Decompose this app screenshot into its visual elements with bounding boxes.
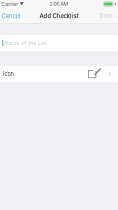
staticText: Carrier [1,1,18,7]
button[interactable]: Cancel [0,8,23,24]
button[interactable]: Done [97,8,118,24]
staticText: Name of the List [4,40,47,46]
staticText: 2:06 AM [49,1,68,7]
staticText: Icon [3,71,14,77]
staticText: Cancel [2,12,20,20]
button[interactable]: Icon [0,66,118,82]
staticText: Done [100,13,113,19]
staticText: Add Checklist [39,12,78,20]
